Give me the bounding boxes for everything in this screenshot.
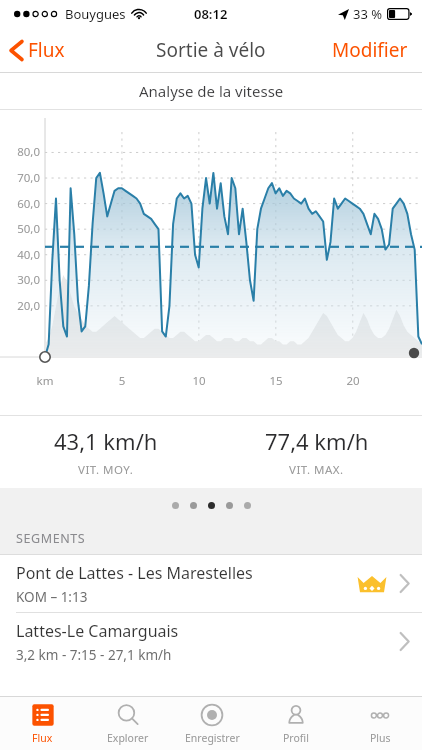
staticText: SEGMENTS [16,530,86,547]
button[interactable]: Explorer [85,697,170,750]
staticText: 08:12 [194,5,228,23]
button[interactable]: Pont de Lattes - Les Marestelles [0,555,422,612]
staticText: 20 [339,373,367,389]
staticText: km [31,373,59,389]
staticText: Plus [370,731,391,745]
button[interactable]: Flux [0,697,85,750]
button[interactable]: Flux [0,28,73,72]
staticText: KOM – 1:13 [16,588,88,606]
button[interactable]: Profil [254,697,338,750]
staticText: Explorer [107,731,149,745]
staticText: 50,0 [4,221,40,237]
staticText: 70,0 [4,170,40,186]
staticText: Analyse de la vitesse [139,81,284,101]
other: KOM crown [357,573,387,595]
staticText: 20,0 [4,298,40,314]
staticText: Lattes-Le Camarguais [16,620,179,642]
staticText: Enregistrer [185,731,240,745]
staticText: Bouygues [65,5,126,23]
staticText: 43,1 km/h [54,426,158,456]
staticText: 40,0 [4,247,40,263]
button[interactable]: Enregistrer [170,697,254,750]
staticText: Modifier [332,37,408,63]
staticText: 33 % [353,5,383,23]
staticText: VIT. MAX. [289,462,344,478]
staticText: VIT. MOY. [78,462,134,478]
staticText: 30,0 [4,272,40,288]
staticText: 10 [185,373,213,389]
staticText: 3,2 km - 7:15 - 27,1 km/h [16,646,172,664]
staticText: 80,0 [4,144,40,160]
button[interactable]: Plus [338,697,422,750]
button[interactable]: Lattes-Le Camarguais [0,613,422,670]
staticText: 60,0 [4,196,40,212]
staticText: Flux [28,37,65,63]
staticText: 5 [108,373,136,389]
staticText: Profil [283,731,309,745]
staticText: Flux [32,731,53,745]
staticText: 15 [262,373,290,389]
button[interactable]: Modifier [318,28,422,72]
staticText: Sortie à vélo [156,37,266,63]
staticText: Pont de Lattes - Les Marestelles [16,562,253,584]
staticText: 77,4 km/h [265,426,369,456]
